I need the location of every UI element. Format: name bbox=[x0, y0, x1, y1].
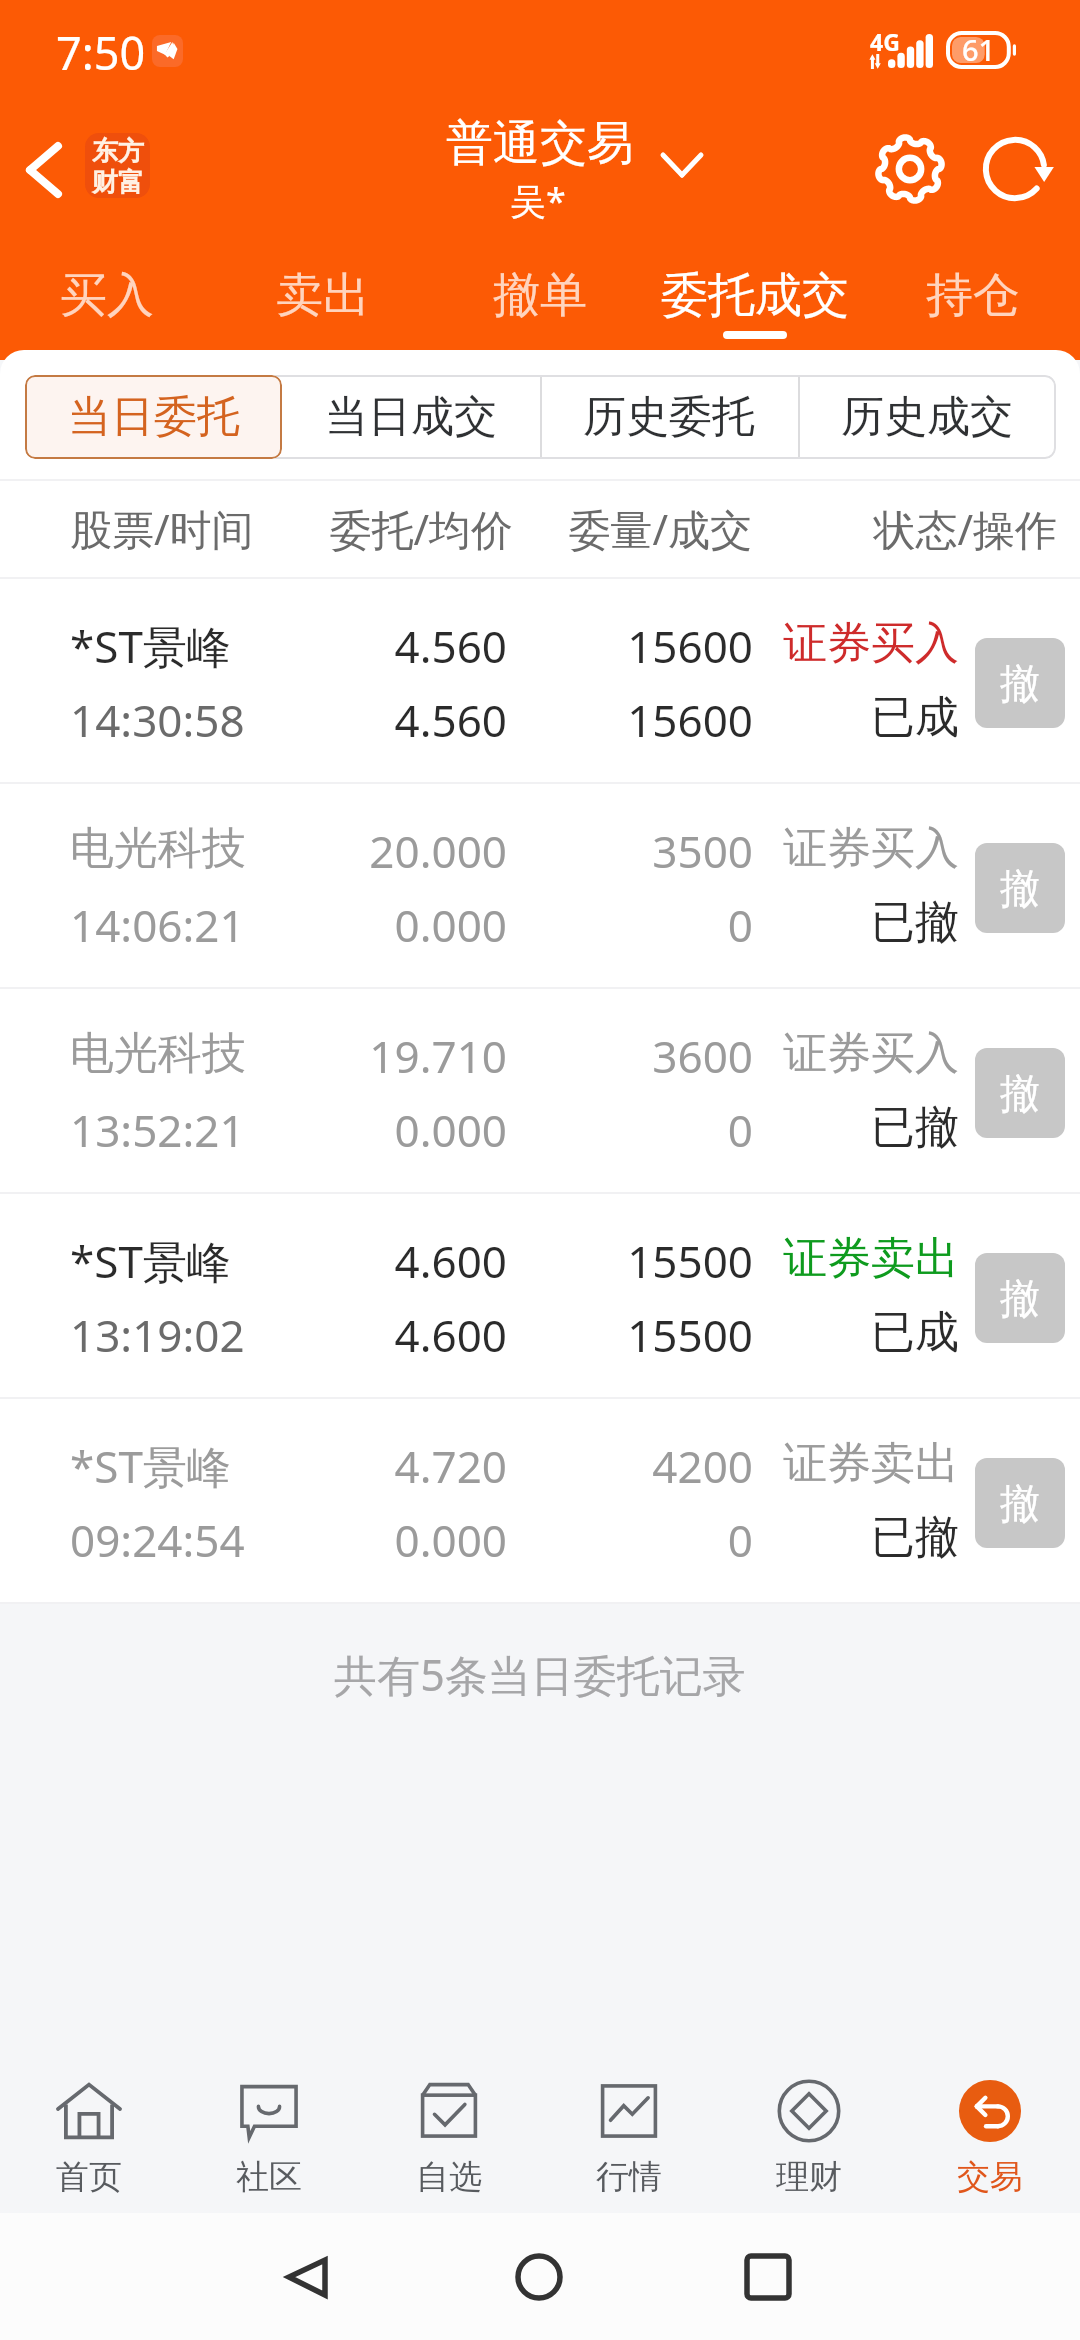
staticText: 理财 bbox=[776, 2156, 842, 2198]
staticText: 0.000 bbox=[0, 1510, 507, 1570]
staticText: 交易 bbox=[957, 2156, 1023, 2198]
staticText: 撤 bbox=[1000, 863, 1040, 913]
button[interactable]: Home bbox=[508, 2251, 568, 2303]
staticText: 0.000 bbox=[0, 1100, 507, 1160]
button[interactable]: Recents bbox=[738, 2251, 798, 2303]
staticText: 社区 bbox=[236, 2156, 302, 2198]
staticText: 4.600 bbox=[0, 1231, 507, 1291]
staticText: 首页 bbox=[56, 2156, 122, 2198]
staticText: 证券买入 bbox=[0, 821, 959, 876]
button[interactable]: 委托成交 bbox=[643, 258, 867, 348]
staticText: 撤 bbox=[1000, 658, 1040, 708]
button[interactable]: 交易 bbox=[902, 2060, 1078, 2210]
button[interactable]: *ST景峰 bbox=[0, 1194, 1080, 1397]
button[interactable]: 买入 bbox=[43, 258, 171, 348]
staticText: 行情 bbox=[596, 2156, 662, 2198]
staticText: 19.710 bbox=[0, 1026, 507, 1086]
staticText: 13:52:21 bbox=[70, 1100, 245, 1160]
button[interactable]: 撤 bbox=[975, 843, 1065, 933]
staticText: 已成 bbox=[0, 690, 959, 745]
button[interactable]: 东方 bbox=[85, 133, 150, 198]
staticText: 4.720 bbox=[0, 1436, 507, 1496]
button[interactable]: 自选 bbox=[361, 2060, 537, 2210]
button[interactable]: 撤单 bbox=[476, 258, 604, 348]
staticText: 撤 bbox=[1000, 1068, 1040, 1118]
staticText: 东方 bbox=[92, 135, 144, 168]
staticText: 13:19:02 bbox=[70, 1305, 245, 1365]
staticText: 持仓 bbox=[926, 266, 1020, 325]
staticText: 吴* bbox=[510, 176, 566, 225]
staticText: 电光科技 bbox=[70, 821, 246, 876]
button[interactable]: Switch account bbox=[650, 133, 714, 197]
staticText: 09:24:54 bbox=[70, 1510, 245, 1570]
button[interactable]: 行情 bbox=[541, 2060, 717, 2210]
staticText: 财富 bbox=[92, 166, 144, 198]
staticText: 证券卖出 bbox=[0, 1436, 959, 1491]
button[interactable]: 首页 bbox=[1, 2060, 177, 2210]
button[interactable]: 社区 bbox=[181, 2060, 357, 2210]
staticText: 已撤 bbox=[0, 1510, 959, 1565]
staticText: 20.000 bbox=[0, 821, 507, 881]
button[interactable]: 撤 bbox=[975, 1253, 1065, 1343]
button[interactable]: 电光科技 bbox=[0, 989, 1080, 1192]
staticText: 历史成交 bbox=[841, 390, 1013, 444]
staticText: 61 bbox=[962, 30, 996, 68]
staticText: 7:50 bbox=[56, 22, 146, 83]
staticText: 委量/成交 bbox=[0, 500, 752, 557]
staticText: 状态/操作 bbox=[0, 500, 1057, 557]
staticText: 已撤 bbox=[0, 895, 959, 950]
staticText: 买入 bbox=[60, 266, 154, 325]
staticText: 0.000 bbox=[0, 895, 507, 955]
staticText: 14:06:21 bbox=[70, 895, 245, 955]
staticText: *ST景峰 bbox=[70, 1231, 231, 1291]
button[interactable]: *ST景峰 bbox=[0, 1399, 1080, 1602]
button[interactable]: 当日委托 bbox=[25, 375, 282, 459]
button[interactable]: 卖出 bbox=[259, 258, 387, 348]
staticText: *ST景峰 bbox=[70, 616, 231, 676]
staticText: 撤 bbox=[1000, 1273, 1040, 1323]
staticText: 卖出 bbox=[276, 266, 370, 325]
staticText: 0 bbox=[0, 895, 753, 955]
staticText: 撤 bbox=[1000, 1478, 1040, 1528]
staticText: *ST景峰 bbox=[70, 1436, 231, 1496]
button[interactable]: Back bbox=[278, 2251, 338, 2303]
button[interactable]: 撤 bbox=[975, 1458, 1065, 1548]
staticText: 15500 bbox=[0, 1231, 753, 1291]
staticText: 已撤 bbox=[0, 1100, 959, 1155]
staticText: 0 bbox=[0, 1510, 753, 1570]
staticText: 委托/均价 bbox=[0, 500, 513, 557]
button[interactable]: 当日成交 bbox=[282, 375, 540, 459]
staticText: 历史委托 bbox=[583, 390, 755, 444]
staticText: 4.600 bbox=[0, 1305, 507, 1365]
button[interactable]: Settings bbox=[874, 133, 946, 205]
button[interactable]: 持仓 bbox=[909, 258, 1037, 348]
staticText: 股票/时间 bbox=[70, 500, 254, 557]
button[interactable]: 历史委托 bbox=[540, 375, 798, 459]
staticText: 15600 bbox=[0, 690, 753, 750]
staticText: 15600 bbox=[0, 616, 753, 676]
button[interactable]: 撤 bbox=[975, 638, 1065, 728]
staticText: 3500 bbox=[0, 821, 753, 881]
staticText: 共有5条当日委托记录 bbox=[0, 1645, 1080, 1704]
staticText: 3600 bbox=[0, 1026, 753, 1086]
staticText: 14:30:58 bbox=[70, 690, 245, 750]
staticText: 证券卖出 bbox=[0, 1231, 959, 1286]
staticText: 4G bbox=[870, 26, 900, 57]
staticText: 0 bbox=[0, 1100, 753, 1160]
staticText: 4.560 bbox=[0, 690, 507, 750]
button[interactable]: 撤 bbox=[975, 1048, 1065, 1138]
staticText: 委托成交 bbox=[661, 266, 849, 325]
staticText: 15500 bbox=[0, 1305, 753, 1365]
button[interactable]: Back bbox=[8, 134, 80, 206]
button[interactable]: *ST景峰 bbox=[0, 579, 1080, 782]
staticText: 4.560 bbox=[0, 616, 507, 676]
button[interactable]: 历史成交 bbox=[798, 375, 1056, 459]
button[interactable]: 理财 bbox=[721, 2060, 897, 2210]
staticText: 已成 bbox=[0, 1305, 959, 1360]
staticText: 证券买入 bbox=[0, 616, 959, 671]
staticText: 普通交易 bbox=[446, 114, 634, 173]
staticText: 当日委托 bbox=[68, 390, 240, 444]
button[interactable]: Refresh bbox=[979, 133, 1051, 205]
button[interactable]: 电光科技 bbox=[0, 784, 1080, 987]
staticText: 证券买入 bbox=[0, 1026, 959, 1081]
